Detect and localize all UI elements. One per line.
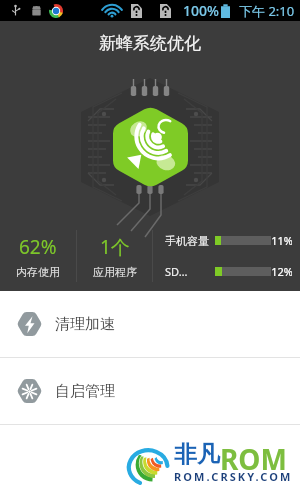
staticText: 非凡 bbox=[174, 440, 220, 469]
staticText: 下午 2:10 bbox=[239, 2, 295, 20]
staticText: 100% bbox=[183, 1, 219, 20]
button[interactable]: 清理加速 bbox=[0, 291, 300, 357]
staticText: 新蜂系统优化 bbox=[99, 33, 201, 54]
staticText: SD… bbox=[165, 264, 215, 279]
button[interactable]: 自启管理 bbox=[0, 358, 300, 424]
staticText: ROM bbox=[220, 440, 287, 478]
staticText: 清理加速 bbox=[55, 315, 115, 334]
staticText: 1个 bbox=[100, 234, 130, 260]
staticText: 11% bbox=[271, 233, 292, 248]
staticText: 12% bbox=[271, 264, 292, 279]
staticText: 内存使用 bbox=[16, 265, 60, 279]
staticText: 应用程序 bbox=[93, 265, 137, 279]
staticText: 手机容量 bbox=[165, 234, 215, 248]
staticText: 自启管理 bbox=[55, 382, 115, 401]
button[interactable]: 62% bbox=[0, 221, 76, 291]
staticText: 62% bbox=[19, 234, 57, 260]
button[interactable]: 1个 bbox=[77, 221, 152, 291]
staticText: ROM.CRSKY.COM bbox=[174, 469, 293, 484]
